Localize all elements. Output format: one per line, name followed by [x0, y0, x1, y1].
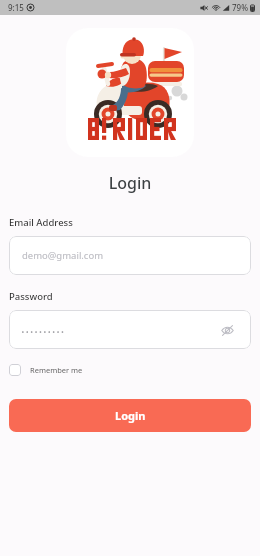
- button[interactable]: Login: [9, 399, 251, 432]
- staticText: Login: [115, 408, 146, 423]
- button[interactable]: Show password: [216, 319, 238, 341]
- button[interactable]: demo@gmail.com: [9, 236, 251, 275]
- staticText: Login: [0, 172, 260, 194]
- staticText: Email Address: [9, 216, 73, 229]
- staticText: Remember me: [30, 365, 83, 375]
- button[interactable]: Remember me: [9, 362, 83, 378]
- staticText: Password: [9, 290, 53, 303]
- staticText: demo@gmail.com: [22, 249, 104, 262]
- staticText: 79%: [232, 2, 248, 13]
- staticText: 9:15: [8, 2, 24, 13]
- button[interactable]: Show password: [9, 310, 251, 349]
